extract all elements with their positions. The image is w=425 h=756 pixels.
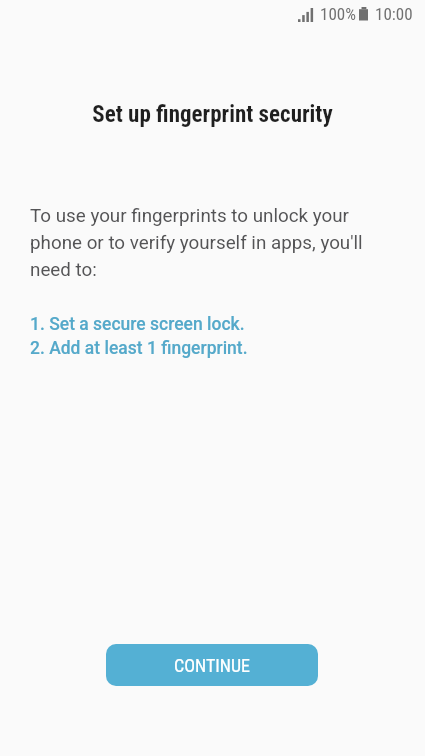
staticText: CONTINUE bbox=[174, 655, 250, 676]
other: Signal strength bbox=[298, 7, 314, 22]
staticText: To use your fingerprints to unlock your … bbox=[30, 205, 395, 281]
staticText: Set up fingerprint security bbox=[0, 101, 425, 128]
staticText: 2. Add at least 1 fingerprint. bbox=[30, 338, 248, 359]
staticText: 100% bbox=[320, 4, 356, 24]
staticText: 10:00 bbox=[375, 4, 413, 24]
staticText: 1. Set a secure screen lock. bbox=[30, 314, 245, 335]
other: Battery full bbox=[359, 7, 368, 21]
button[interactable]: CONTINUE bbox=[106, 644, 318, 686]
